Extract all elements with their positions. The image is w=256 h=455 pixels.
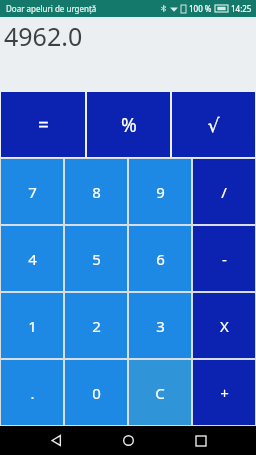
staticText: . xyxy=(30,383,35,403)
button[interactable]: 8 xyxy=(65,159,127,224)
staticText: 9 xyxy=(156,182,165,202)
staticText: 0 xyxy=(92,383,101,403)
staticText: 7 xyxy=(28,182,37,202)
button[interactable]: 4 xyxy=(1,226,63,291)
staticText: 100 % xyxy=(189,3,212,14)
staticText: 5 xyxy=(92,249,101,269)
staticText: % xyxy=(121,112,137,138)
button[interactable]: Back xyxy=(39,426,73,455)
staticText: 8 xyxy=(92,182,101,202)
button[interactable]: √ xyxy=(172,92,255,157)
button[interactable]: = xyxy=(1,92,85,157)
button[interactable]: 5 xyxy=(65,226,127,291)
staticText: C xyxy=(155,383,165,403)
staticText: √ xyxy=(207,114,220,136)
button[interactable]: + xyxy=(193,360,255,425)
staticText: / xyxy=(221,182,227,202)
staticText: 3 xyxy=(156,316,165,336)
staticText: 6 xyxy=(156,249,165,269)
button[interactable]: 7 xyxy=(1,159,63,224)
button[interactable]: 0 xyxy=(65,360,127,425)
button[interactable]: Home xyxy=(111,426,145,455)
button[interactable]: 1 xyxy=(1,293,63,358)
button[interactable]: 6 xyxy=(129,226,191,291)
button[interactable]: / xyxy=(193,159,255,224)
staticText: X xyxy=(220,316,229,336)
staticText: Doar apeluri de urgență xyxy=(6,3,97,14)
button[interactable]: Recent apps xyxy=(184,426,218,455)
staticText: 2 xyxy=(92,316,101,336)
button[interactable]: X xyxy=(193,293,255,358)
staticText: 4 xyxy=(28,249,37,269)
button[interactable]: 2 xyxy=(65,293,127,358)
staticText: + xyxy=(220,383,229,403)
button[interactable]: C xyxy=(129,360,191,425)
staticText: 4962.0 xyxy=(4,19,83,53)
staticText: 1 xyxy=(28,316,37,336)
button[interactable]: . xyxy=(1,360,63,425)
button[interactable]: % xyxy=(87,92,170,157)
staticText: 14:25 xyxy=(231,3,252,14)
staticText: - xyxy=(222,249,227,269)
button[interactable]: 9 xyxy=(129,159,191,224)
button[interactable]: 3 xyxy=(129,293,191,358)
button[interactable]: - xyxy=(193,226,255,291)
staticText: = xyxy=(38,112,49,138)
